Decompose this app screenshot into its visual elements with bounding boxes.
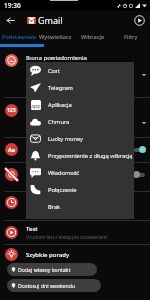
button[interactable]: Wiadomość	[26, 164, 134, 181]
staticText: Filtry	[124, 33, 138, 41]
button[interactable]: Przypomnienie z długą wibracją	[26, 147, 134, 164]
button[interactable]: Back	[3, 13, 18, 28]
staticText: Wiadomość	[48, 169, 134, 177]
button[interactable]: Ikona powiadomienia	[0, 47, 150, 97]
button[interactable]: Filtry	[112, 29, 150, 47]
button[interactable]: Wibracja	[0, 163, 150, 191]
staticText: Telegram	[48, 84, 134, 92]
staticText: Brak	[48, 203, 134, 211]
staticText: 19:36	[4, 1, 21, 10]
button[interactable]: Lucky money	[26, 130, 134, 147]
staticText: Dostosuj dni weekendu	[18, 282, 76, 289]
button[interactable]: Połączenie	[26, 181, 134, 198]
staticText: Test	[26, 225, 38, 233]
staticText: Chmura	[48, 118, 134, 126]
staticText: Domyślna	[26, 119, 52, 126]
button[interactable]: 123	[0, 98, 150, 137]
staticText: Wibracja	[26, 168, 51, 176]
staticText: Szybkie porady	[26, 251, 70, 259]
button[interactable]: Szybkie porady	[5, 248, 70, 261]
button[interactable]: Test	[0, 221, 150, 244]
button[interactable]: Telegram	[26, 79, 134, 96]
staticText: Lucky money	[48, 135, 134, 143]
button[interactable]: Podstawowe	[0, 29, 37, 47]
staticText: Dodaj własny kontakt	[18, 266, 71, 273]
button[interactable]: app	[26, 96, 134, 113]
staticText: Aa	[8, 146, 16, 154]
staticText: Liczba powiadomień	[26, 104, 84, 112]
staticText: Przypomnienie z długą wibracją	[48, 152, 134, 160]
button[interactable]: Czas wyświetlania	[0, 192, 150, 220]
staticText: Aplikacja	[48, 101, 134, 109]
staticText: app	[31, 102, 41, 109]
button[interactable]: Play sample	[132, 13, 147, 28]
staticText: Uruchom test z bieżącymi ustawieniami	[26, 234, 108, 240]
button[interactable]: Aa	[0, 138, 150, 162]
staticText: Wyświetlacz	[39, 33, 72, 41]
button[interactable]: Czat	[26, 62, 134, 79]
button[interactable]: Wyświetlacz	[37, 29, 74, 47]
staticText: Czat	[48, 67, 134, 75]
staticText: Zawsze włączone	[26, 205, 63, 211]
staticText: Wibracje	[81, 33, 105, 41]
button[interactable]: Chmura	[26, 113, 134, 130]
button[interactable]: Brak	[26, 198, 134, 215]
staticText: 123	[7, 107, 16, 114]
staticText: Ikona powiadomienia	[26, 54, 87, 62]
button[interactable]: Dostosuj dni weekendu	[7, 279, 101, 292]
staticText: Wibruj przy powiadomieniu	[26, 177, 86, 183]
staticText: Połączenie	[48, 186, 134, 194]
staticText: Czat	[26, 71, 38, 78]
button[interactable]: Dodaj własny kontakt	[7, 263, 97, 276]
button[interactable]: Wibracje	[74, 29, 112, 47]
staticText: Gmail	[38, 14, 63, 26]
staticText: Podstawowe	[2, 33, 36, 41]
